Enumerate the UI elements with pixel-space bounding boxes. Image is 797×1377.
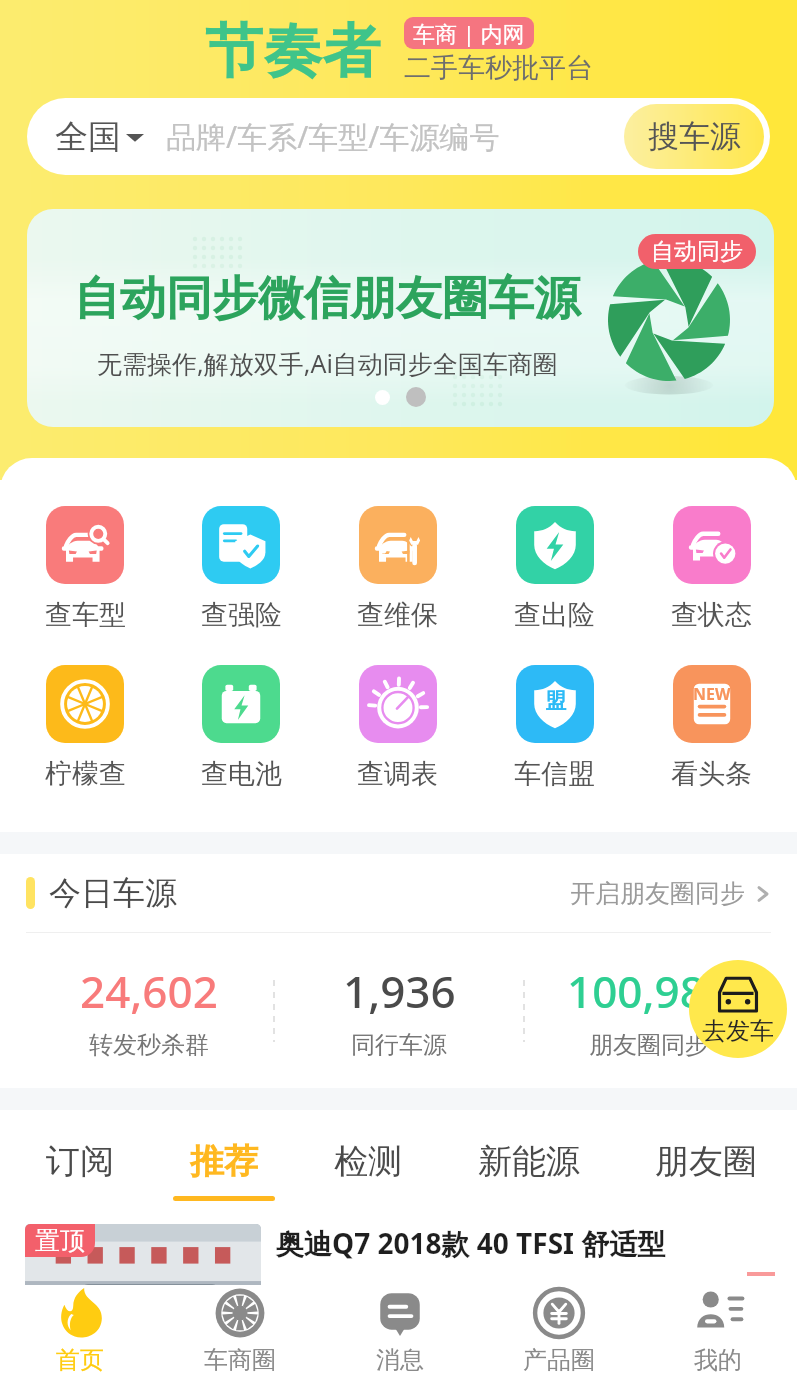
staticText: 二手车秒批平台 [404,51,593,85]
staticText: 首页 [56,1345,104,1375]
staticText: 订阅 [46,1140,114,1183]
button[interactable]: 新能源 [461,1110,596,1208]
button[interactable]: 订阅 [29,1110,131,1208]
button[interactable]: 全国 [27,98,770,175]
button[interactable]: 朋友圈 [638,1110,773,1208]
staticText: 看头条 [671,757,752,791]
staticText: NEW [693,683,731,705]
staticText: 新能源 [478,1140,580,1183]
staticText: 搜车源 [648,117,741,156]
button[interactable]: 查出险 [476,506,633,632]
staticText: 我的 [694,1345,742,1375]
staticText: 置顶 [35,1225,85,1256]
button[interactable]: 查状态 [633,506,790,632]
staticText: 全国 [55,116,121,158]
staticText: 推荐 [190,1140,258,1183]
staticText: 查调表 [357,757,438,791]
button[interactable]: 置顶 [25,1224,797,1334]
button[interactable]: 首页 [0,1285,160,1377]
button[interactable]: 查电池 [163,665,319,791]
button[interactable]: 查调表 [319,665,476,791]
staticText: 今日车源 [49,873,177,913]
staticText: 查出险 [514,598,595,632]
staticText: 车商圈 [204,1345,276,1375]
button[interactable]: 车商圈 [160,1285,320,1377]
button[interactable]: 柠檬查 [7,665,163,791]
staticText: 消息 [376,1345,424,1375]
button[interactable]: 24,602 [24,961,273,1060]
button[interactable]: 100,983 [525,961,773,1060]
staticText: 查车型 [45,598,126,632]
button[interactable]: 盟 [476,665,633,791]
staticText: 无需操作,解放双手,Ai自动同步全国车商圈 [97,346,558,380]
button[interactable]: 查强险 [163,506,319,632]
staticText: 查电池 [201,757,282,791]
staticText: 100,983 [567,961,731,1021]
button[interactable]: 查车型 [7,506,163,632]
staticText: 24,602 [80,961,218,1021]
staticText: 查状态 [671,598,752,632]
button[interactable]: 产品圈 [479,1285,638,1377]
button[interactable]: 搜车源 [624,104,764,169]
staticText: 产品圈 [523,1345,595,1375]
button[interactable]: 去发车 [689,960,787,1058]
button[interactable]: 消息 [320,1285,479,1377]
button[interactable]: 1,936 [275,961,523,1060]
staticText: 开启朋友圈同步 [570,878,745,909]
staticText: 查强险 [201,598,282,632]
staticText: 去发车 [702,1016,774,1046]
staticText: 自动同步 [651,237,743,266]
staticText: 朋友圈同步 [589,1030,709,1060]
staticText: 自动同步微信朋友圈车源 [74,270,580,328]
staticText: 转发秒杀群 [89,1030,209,1060]
staticText: 检测 [334,1140,402,1183]
button[interactable]: NEW [633,665,790,791]
button[interactable]: 查维保 [319,506,476,632]
button[interactable]: 我的 [638,1285,797,1377]
staticText: 朋友圈 [655,1140,757,1183]
staticText: 奥迪Q7 2018款 40 TFSI 舒适型 [276,1224,666,1262]
button[interactable]: 开启朋友圈同步 [570,878,773,909]
button[interactable]: 自动同步微信朋友圈车源 [27,209,774,427]
button[interactable]: 推荐 [173,1110,275,1208]
button[interactable]: 检测 [317,1110,419,1208]
staticText: 同行车源 [351,1030,447,1060]
staticText: 品牌/车系/车型/车源编号 [166,116,500,157]
staticText: 1,936 [343,961,456,1021]
staticText: 车信盟 [514,757,595,791]
staticText: 盟 [545,688,566,714]
staticText: 节奏者 [205,15,382,88]
staticText: 查维保 [357,598,438,632]
staticText: 车商 | 内网 [413,18,525,48]
staticText: 柠檬查 [45,757,126,791]
